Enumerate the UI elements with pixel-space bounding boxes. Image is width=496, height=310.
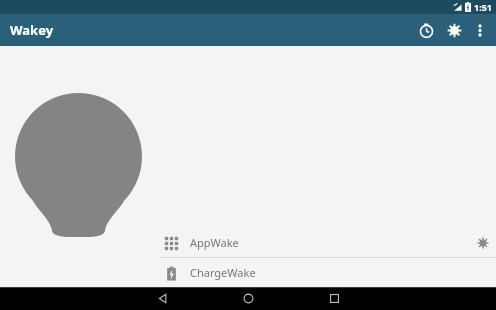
button[interactable]: AppWake — [150, 228, 496, 257]
button[interactable]: ChargeWake — [150, 258, 496, 287]
staticText: Wakey — [10, 21, 54, 39]
staticText: 1:51 — [474, 1, 492, 13]
button[interactable]: Recent apps — [318, 287, 350, 310]
button[interactable]: Home — [232, 287, 264, 310]
button[interactable]: Settings — [440, 16, 468, 44]
staticText: AppWake — [190, 235, 470, 250]
button[interactable]: AppWake settings — [470, 230, 496, 256]
staticText: ChargeWake — [190, 265, 470, 280]
button[interactable]: Timer — [412, 16, 440, 44]
button[interactable]: More options — [468, 18, 492, 42]
button[interactable]: Back — [146, 287, 178, 310]
